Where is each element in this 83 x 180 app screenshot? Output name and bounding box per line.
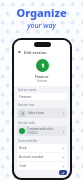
staticText: Bank xyxy=(19,146,62,150)
staticText: Section icon xyxy=(18,103,35,107)
staticText: Customized color xyxy=(27,127,54,131)
staticText: 6 items xyxy=(37,79,48,83)
staticText: Account number xyxy=(19,155,62,159)
button[interactable]: Select icon xyxy=(17,108,67,118)
button[interactable]: Section icon xyxy=(36,59,49,72)
staticText: your way xyxy=(27,21,56,31)
staticText: Finance xyxy=(35,74,49,79)
staticText: Organize xyxy=(16,5,67,20)
staticText: Section name xyxy=(18,88,37,92)
button[interactable]: Customized color xyxy=(17,126,67,136)
button[interactable]: Finance xyxy=(17,93,67,100)
staticText: #1B9E3E xyxy=(27,131,38,135)
staticText: Content fields xyxy=(18,139,37,143)
button[interactable]: Save xyxy=(59,170,67,175)
button[interactable]: Card xyxy=(17,162,67,170)
button[interactable]: Bank xyxy=(17,144,67,152)
staticText: Section color xyxy=(18,121,36,125)
staticText: Select icon xyxy=(28,111,44,115)
button[interactable]: Account number xyxy=(17,153,67,161)
staticText: Edit section xyxy=(24,50,47,55)
staticText: Card xyxy=(19,164,62,168)
button[interactable]: Back xyxy=(17,49,23,55)
staticText: Finance xyxy=(19,94,32,99)
